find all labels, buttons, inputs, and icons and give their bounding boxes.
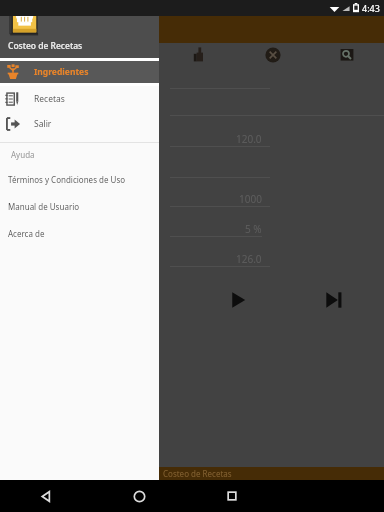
button[interactable]: Cancel (263, 45, 283, 65)
staticText: 4:43 (362, 2, 380, 14)
button[interactable]: Back (31, 481, 61, 511)
button[interactable]: Términos y Condiciones de Uso (0, 166, 159, 193)
staticText: Costeo de Recetas (163, 468, 232, 479)
staticText: Manual de Usuario (8, 201, 80, 212)
button[interactable]: Manual de Usuario (0, 193, 159, 220)
staticText: Ayuda (11, 149, 35, 160)
button[interactable]: Ingredientes (0, 61, 159, 83)
button[interactable]: Home (124, 481, 154, 511)
button[interactable]: Like (189, 45, 209, 65)
button[interactable]: Acerca de (0, 220, 159, 247)
staticText: Costeo de Recetas (8, 40, 83, 52)
staticText: 5 % (245, 222, 262, 236)
staticText: Recetas (34, 93, 65, 105)
button[interactable]: Recetas (0, 86, 159, 111)
button[interactable]: Salir (0, 111, 159, 136)
staticText: Salir (34, 118, 52, 130)
staticText: Términos y Condiciones de Uso (8, 174, 126, 185)
button[interactable]: Play (226, 288, 250, 312)
button[interactable]: Search (337, 45, 357, 65)
button[interactable]: Costeo de Recetas (0, 0, 159, 58)
staticText: Ingredientes (34, 66, 89, 78)
button[interactable]: Next (322, 288, 346, 312)
staticText: 120.0 (236, 132, 262, 146)
button[interactable]: Recents (217, 481, 247, 511)
staticText: 126.0 (236, 252, 262, 266)
staticText: 1000 (239, 192, 262, 206)
staticText: Acerca de (8, 228, 45, 239)
